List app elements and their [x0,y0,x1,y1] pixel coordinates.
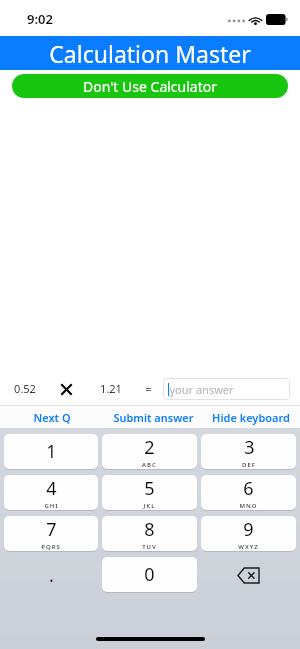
staticText: WXYZ [238,543,259,551]
button[interactable]: 2 [102,434,197,469]
staticText: 2 [144,435,155,460]
staticText: Don't Use Calculator [83,77,217,96]
staticText: . [49,563,54,588]
staticText: Calculation Master [49,38,251,69]
staticText: ABC [142,461,157,469]
staticText: Hide keyboard [212,410,290,425]
button[interactable]: your answer [163,378,290,400]
button[interactable]: 6 [201,475,296,510]
button[interactable]: Don't Use Calculator [12,74,288,98]
staticText: 9 [243,517,254,542]
staticText: 0 [144,562,155,587]
staticText: GHI [44,502,59,510]
staticText: MNO [239,502,258,510]
staticText: PQRS [41,543,61,551]
button[interactable]: Backspace [201,557,296,593]
button[interactable]: 8 [102,516,197,551]
button[interactable]: 4 [4,475,98,510]
staticText: 7 [46,517,57,542]
staticText: = [145,381,152,396]
button[interactable]: . [4,557,98,593]
button[interactable]: Submit answer [104,406,202,428]
staticText: 4 [46,476,57,501]
button[interactable]: 3 [201,434,296,469]
button[interactable]: 0 [102,557,197,592]
staticText: 8 [144,517,155,542]
button[interactable]: 9 [201,516,296,551]
staticText: TUV [142,543,157,551]
staticText: Next Q [33,410,71,425]
button[interactable]: Next Q [0,406,104,428]
staticText: 1.21 [100,381,122,396]
staticText: 0.52 [14,381,36,396]
button[interactable]: Hide keyboard [202,406,300,428]
staticText: 6 [243,476,254,501]
staticText: DEF [242,461,256,469]
staticText: 1 [46,439,57,464]
staticText: 5 [144,476,155,501]
staticText: your answer [169,382,234,397]
staticText: Submit answer [113,410,194,425]
staticText: 9:02 [27,10,53,28]
button[interactable]: Calculation Master [0,36,300,70]
button[interactable]: 1 [4,434,98,469]
staticText: JKL [143,502,156,510]
staticText: 3 [244,435,255,460]
button[interactable]: 5 [102,475,197,510]
button[interactable]: 7 [4,516,98,551]
